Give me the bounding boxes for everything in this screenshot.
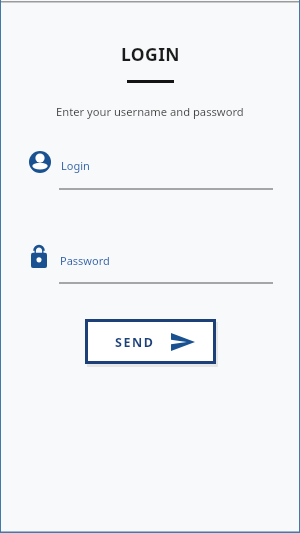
staticText: Enter your username and password	[56, 104, 244, 119]
staticText: Login	[61, 158, 90, 173]
button[interactable]: SEND	[85, 319, 216, 364]
button[interactable]: Login	[29, 151, 300, 173]
staticText: LOGIN	[121, 42, 180, 66]
button[interactable]: Password	[31, 245, 300, 268]
staticText: Password	[60, 253, 110, 268]
staticText: SEND	[115, 334, 155, 351]
